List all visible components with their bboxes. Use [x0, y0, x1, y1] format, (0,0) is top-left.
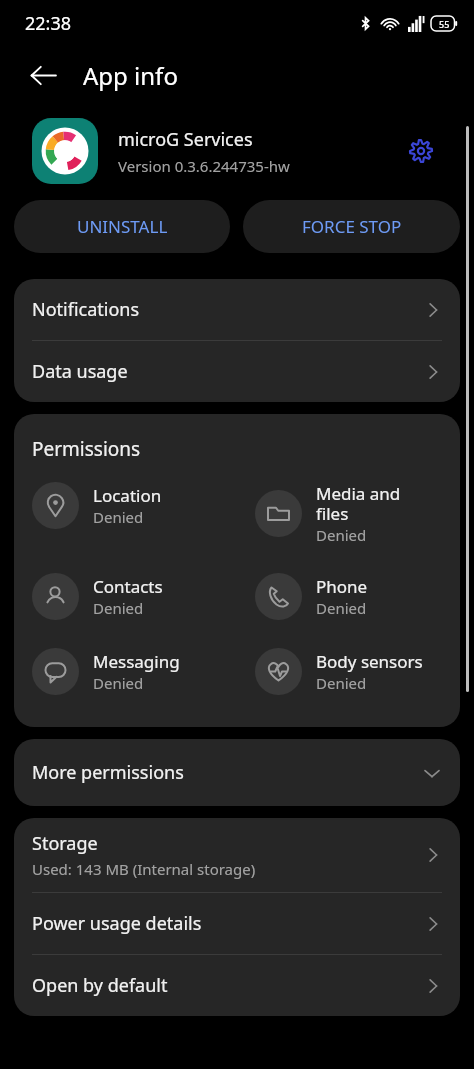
button[interactable]: Open by default	[14, 955, 460, 1016]
staticText: App info	[83, 59, 178, 92]
staticText: Body sensors	[316, 650, 423, 673]
button[interactable]: FORCE STOP	[243, 200, 460, 253]
staticText: Denied	[316, 598, 367, 618]
staticText: Denied	[93, 673, 144, 693]
staticText: Storage	[32, 831, 98, 856]
button[interactable]: Messaging	[14, 648, 237, 695]
staticText: Phone	[316, 575, 368, 598]
button[interactable]: Data usage	[14, 341, 460, 402]
staticText: Notifications	[32, 297, 424, 322]
staticText: Media and files	[316, 482, 401, 525]
staticText: Used: 143 MB (Internal storage)	[32, 859, 256, 879]
button[interactable]: Media and files	[237, 482, 460, 545]
button[interactable]: More permissions	[14, 739, 460, 806]
button[interactable]: Phone	[237, 573, 460, 620]
button[interactable]: Power usage details	[14, 893, 460, 954]
button[interactable]: Back	[25, 57, 61, 93]
button[interactable]: Storage	[14, 818, 460, 892]
staticText: microG Services	[118, 127, 253, 152]
button[interactable]: Location	[14, 482, 237, 529]
staticText: Open by default	[32, 973, 424, 998]
staticText: Denied	[316, 525, 367, 545]
staticText: Contacts	[93, 575, 163, 598]
staticText: Permissions	[32, 436, 141, 462]
staticText: 22:38	[25, 11, 72, 36]
staticText: Data usage	[32, 359, 424, 384]
staticText: More permissions	[32, 760, 422, 785]
staticText: 55	[439, 18, 450, 30]
button[interactable]: Notifications	[14, 279, 460, 340]
staticText: Location	[93, 484, 162, 507]
button[interactable]: UNINSTALL	[14, 200, 230, 253]
staticText: Denied	[93, 598, 144, 618]
button[interactable]: App settings	[400, 130, 442, 172]
staticText: Power usage details	[32, 911, 424, 936]
staticText: Denied	[93, 507, 144, 527]
staticText: Version 0.3.6.244735-hw	[118, 156, 290, 176]
staticText: Denied	[316, 673, 367, 693]
button[interactable]: Contacts	[14, 573, 237, 620]
staticText: UNINSTALL	[77, 215, 168, 238]
button[interactable]: Body sensors	[237, 648, 460, 695]
button[interactable]: microG Services icon	[32, 118, 98, 184]
staticText: FORCE STOP	[302, 215, 402, 238]
staticText: Messaging	[93, 650, 180, 673]
